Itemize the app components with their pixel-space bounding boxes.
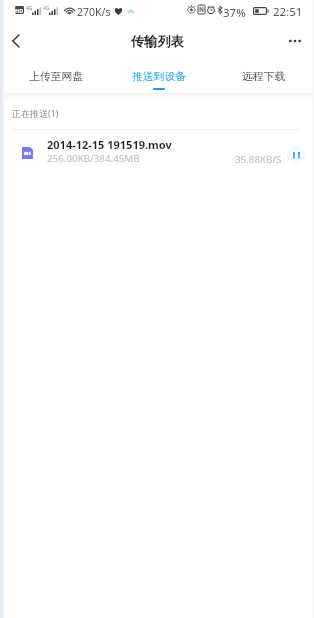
staticText: 4G [26,5,33,12]
button[interactable]: Pause [287,146,305,164]
staticText: 2014-12-15 191519.mov [47,137,172,152]
staticText: 正在推送(1) [12,107,59,119]
staticText: 4G [43,5,50,12]
staticText: 35.88KB/S [235,153,282,166]
staticText: 270K/s [77,5,111,19]
staticText: 传输列表 [131,33,184,50]
staticText: 推送到设备 [132,70,186,84]
staticText: 上传至网盘 [29,70,83,84]
button[interactable]: 远程下载 [209,58,314,93]
button[interactable]: More options [280,26,310,56]
staticText: 22:51 [273,4,303,20]
staticText: 37% [223,5,246,21]
button[interactable]: Back [0,25,31,57]
button[interactable]: 上传至网盘 [0,58,104,93]
button[interactable]: 2014-12-15 191519.mov [0,130,314,177]
staticText: 远程下载 [242,70,286,84]
staticText: 256.00KB/384.45MB [47,152,140,165]
button[interactable]: 推送到设备 [104,58,209,93]
staticText: HD [15,7,24,14]
